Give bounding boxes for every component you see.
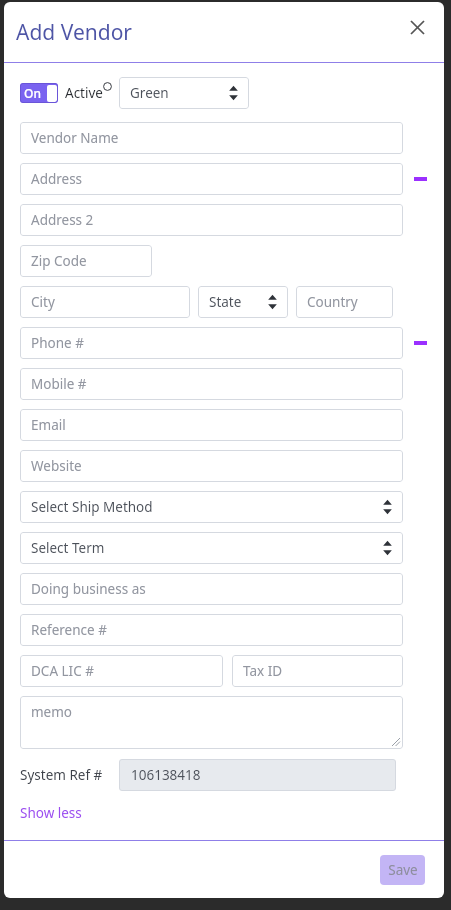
button[interactable]: memo xyxy=(20,696,403,749)
staticText: System Ref # xyxy=(20,766,103,784)
button[interactable]: Vendor Name xyxy=(20,122,403,154)
button[interactable]: Remove xyxy=(409,334,431,352)
button[interactable]: Country xyxy=(296,286,393,318)
staticText: Address xyxy=(31,170,83,188)
button[interactable]: Show less xyxy=(20,804,82,822)
staticText: Phone # xyxy=(31,334,84,352)
staticText: Vendor Name xyxy=(31,129,119,147)
staticText: Tax ID xyxy=(243,662,283,680)
button[interactable]: DCA LIC # xyxy=(20,655,223,687)
button[interactable]: State xyxy=(198,286,288,318)
staticText: On xyxy=(24,85,41,101)
button[interactable]: City xyxy=(20,286,190,318)
staticText: Green xyxy=(130,84,169,102)
staticText: Zip Code xyxy=(31,252,87,270)
staticText: State xyxy=(209,293,242,311)
staticText: Address 2 xyxy=(31,211,94,229)
staticText: Doing business as xyxy=(31,580,146,598)
button[interactable]: Website xyxy=(20,450,403,482)
staticText: memo xyxy=(31,703,73,721)
button[interactable]: Green xyxy=(119,77,249,109)
staticText: Email xyxy=(31,416,66,434)
staticText: Save xyxy=(388,861,418,879)
staticText: Add Vendor xyxy=(16,18,133,47)
button[interactable]: Mobile # xyxy=(20,368,403,400)
button[interactable]: Remove xyxy=(409,170,431,188)
staticText: Website xyxy=(31,457,82,475)
staticText: Show less xyxy=(20,804,82,822)
button[interactable]: Address 2 xyxy=(20,204,403,236)
staticText: DCA LIC # xyxy=(31,662,94,680)
staticText: Select Term xyxy=(31,539,105,557)
button[interactable]: Save xyxy=(380,855,425,885)
button[interactable]: 106138418 xyxy=(119,759,396,791)
button[interactable]: Email xyxy=(20,409,403,441)
staticText: Mobile # xyxy=(31,375,87,393)
staticText: 106138418 xyxy=(131,766,201,784)
staticText: City xyxy=(31,293,55,311)
button[interactable]: Phone # xyxy=(20,327,403,359)
staticText: Active xyxy=(65,84,103,102)
staticText: Select Ship Method xyxy=(31,498,153,516)
button[interactable]: Reference # xyxy=(20,614,403,646)
button[interactable]: Address xyxy=(20,163,403,195)
button[interactable]: Tax ID xyxy=(232,655,403,687)
button[interactable]: Close xyxy=(404,14,430,40)
staticText: Reference # xyxy=(31,621,107,639)
button[interactable]: Select Term xyxy=(20,532,403,564)
staticText: Country xyxy=(307,293,358,311)
button[interactable]: Zip Code xyxy=(20,245,152,277)
button[interactable]: Active toggle On xyxy=(20,83,58,103)
button[interactable]: Doing business as xyxy=(20,573,403,605)
button[interactable]: Select Ship Method xyxy=(20,491,403,523)
